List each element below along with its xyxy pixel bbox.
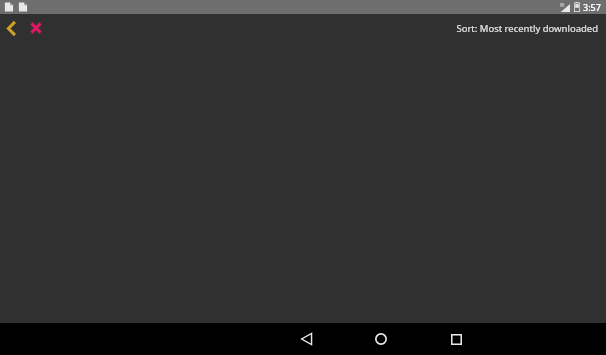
button[interactable]: Home [365,323,397,355]
button[interactable]: Back [290,323,322,355]
staticText: 3:57 [583,1,601,13]
staticText: Sort: Most recently downloaded [456,22,598,35]
button[interactable]: Back [0,17,22,39]
button[interactable]: Recent apps [440,323,472,355]
button[interactable]: Sort: Most recently downloaded [448,18,606,39]
button[interactable]: Close [24,16,48,40]
